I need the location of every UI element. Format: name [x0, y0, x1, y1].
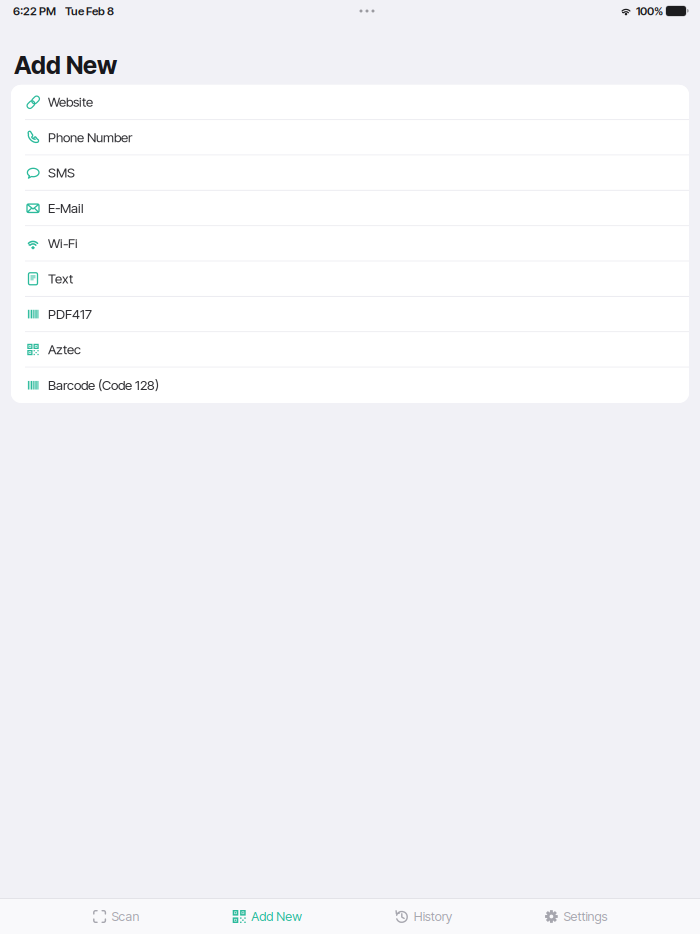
staticText: PDF417	[48, 306, 92, 322]
button[interactable]: PDF417	[11, 297, 689, 332]
staticText: Add New	[251, 909, 302, 924]
button[interactable]: Aztec	[11, 332, 689, 368]
button[interactable]: Barcode (Code 128)	[11, 368, 689, 403]
button[interactable]: Add New	[232, 899, 302, 934]
staticText: Scan	[112, 909, 140, 924]
staticText: Wi-Fi	[48, 235, 78, 251]
button[interactable]: Scan	[93, 899, 140, 934]
staticText: 6:22 PM	[13, 4, 56, 18]
staticText: Settings	[563, 909, 607, 924]
staticText: 100%	[636, 4, 663, 18]
staticText: Website	[48, 94, 93, 110]
staticText: Phone Number	[48, 129, 132, 145]
button[interactable]: History	[395, 899, 452, 934]
staticText: Aztec	[48, 341, 81, 357]
staticText: SMS	[48, 165, 75, 181]
button[interactable]: Settings	[544, 899, 607, 934]
button[interactable]: Text	[11, 262, 689, 297]
staticText: History	[414, 909, 452, 924]
button[interactable]: Phone Number	[11, 120, 689, 156]
staticText: Add New	[14, 50, 117, 80]
staticText: Barcode (Code 128)	[48, 377, 159, 393]
button[interactable]: Wi-Fi	[11, 226, 689, 262]
staticText: Tue Feb 8	[65, 4, 114, 18]
staticText: Text	[48, 271, 73, 287]
button[interactable]: E-Mail	[11, 191, 689, 226]
staticText: E-Mail	[48, 200, 84, 216]
button[interactable]: Website	[11, 85, 689, 120]
button[interactable]: SMS	[11, 155, 689, 191]
